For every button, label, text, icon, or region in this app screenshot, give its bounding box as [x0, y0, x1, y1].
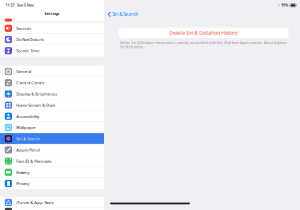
button[interactable]: Display & Brightness: [0, 88, 104, 99]
staticText: Battery: [16, 170, 29, 175]
staticText: Sun 5 Nov: [17, 3, 34, 7]
staticText: Home Screen & Dock: [16, 102, 55, 108]
staticText: Delete Siri & Dictation History: [169, 29, 238, 36]
button[interactable]: Apple Pencil: [0, 144, 104, 155]
staticText: Delete Siri & Dictation interactions cur…: [120, 40, 287, 49]
button[interactable]: Siri & Search: [0, 133, 104, 144]
staticText: Accessibility: [16, 114, 39, 119]
button[interactable]: Home Screen & Dock: [0, 99, 104, 111]
button[interactable]: Control Centre: [0, 77, 104, 88]
staticText: General: [16, 69, 31, 74]
staticText: Wallpaper: [16, 125, 36, 130]
button[interactable]: Battery: [0, 167, 104, 178]
button[interactable]: Face ID & Passcode: [0, 155, 104, 167]
staticText: Privacy: [16, 181, 29, 186]
staticText: 11:37: [6, 3, 15, 7]
staticText: Control Centre: [16, 80, 44, 85]
staticText: Screen Time: [16, 48, 39, 53]
button[interactable]: Screen Time: [0, 45, 104, 56]
staticText: iTunes & App Store: [16, 200, 53, 205]
button[interactable]: General: [0, 66, 104, 77]
button[interactable]: Accessibility: [0, 111, 104, 122]
staticText: Apple Pencil: [16, 147, 40, 153]
button[interactable]: iTunes & App Store: [0, 197, 104, 208]
staticText: Display & Brightness: [16, 91, 57, 97]
button[interactable]: Siri & Search: [104, 8, 141, 20]
staticText: Do Not Disturb: [16, 37, 44, 42]
staticText: Settings: [44, 11, 59, 16]
staticText: Face ID & Passcode: [16, 158, 51, 164]
staticText: Sounds: [16, 26, 31, 31]
staticText: 99%: [281, 3, 288, 7]
button[interactable]: Wallpaper: [0, 122, 104, 133]
staticText: Siri & Search: [112, 11, 138, 17]
button[interactable]: Do Not Disturb: [0, 34, 104, 45]
button[interactable]: Privacy: [0, 178, 104, 189]
staticText: Siri & Search: [16, 136, 40, 141]
button[interactable]: Delete Siri & Dictation History: [119, 28, 289, 38]
button[interactable]: Sounds: [0, 23, 104, 34]
